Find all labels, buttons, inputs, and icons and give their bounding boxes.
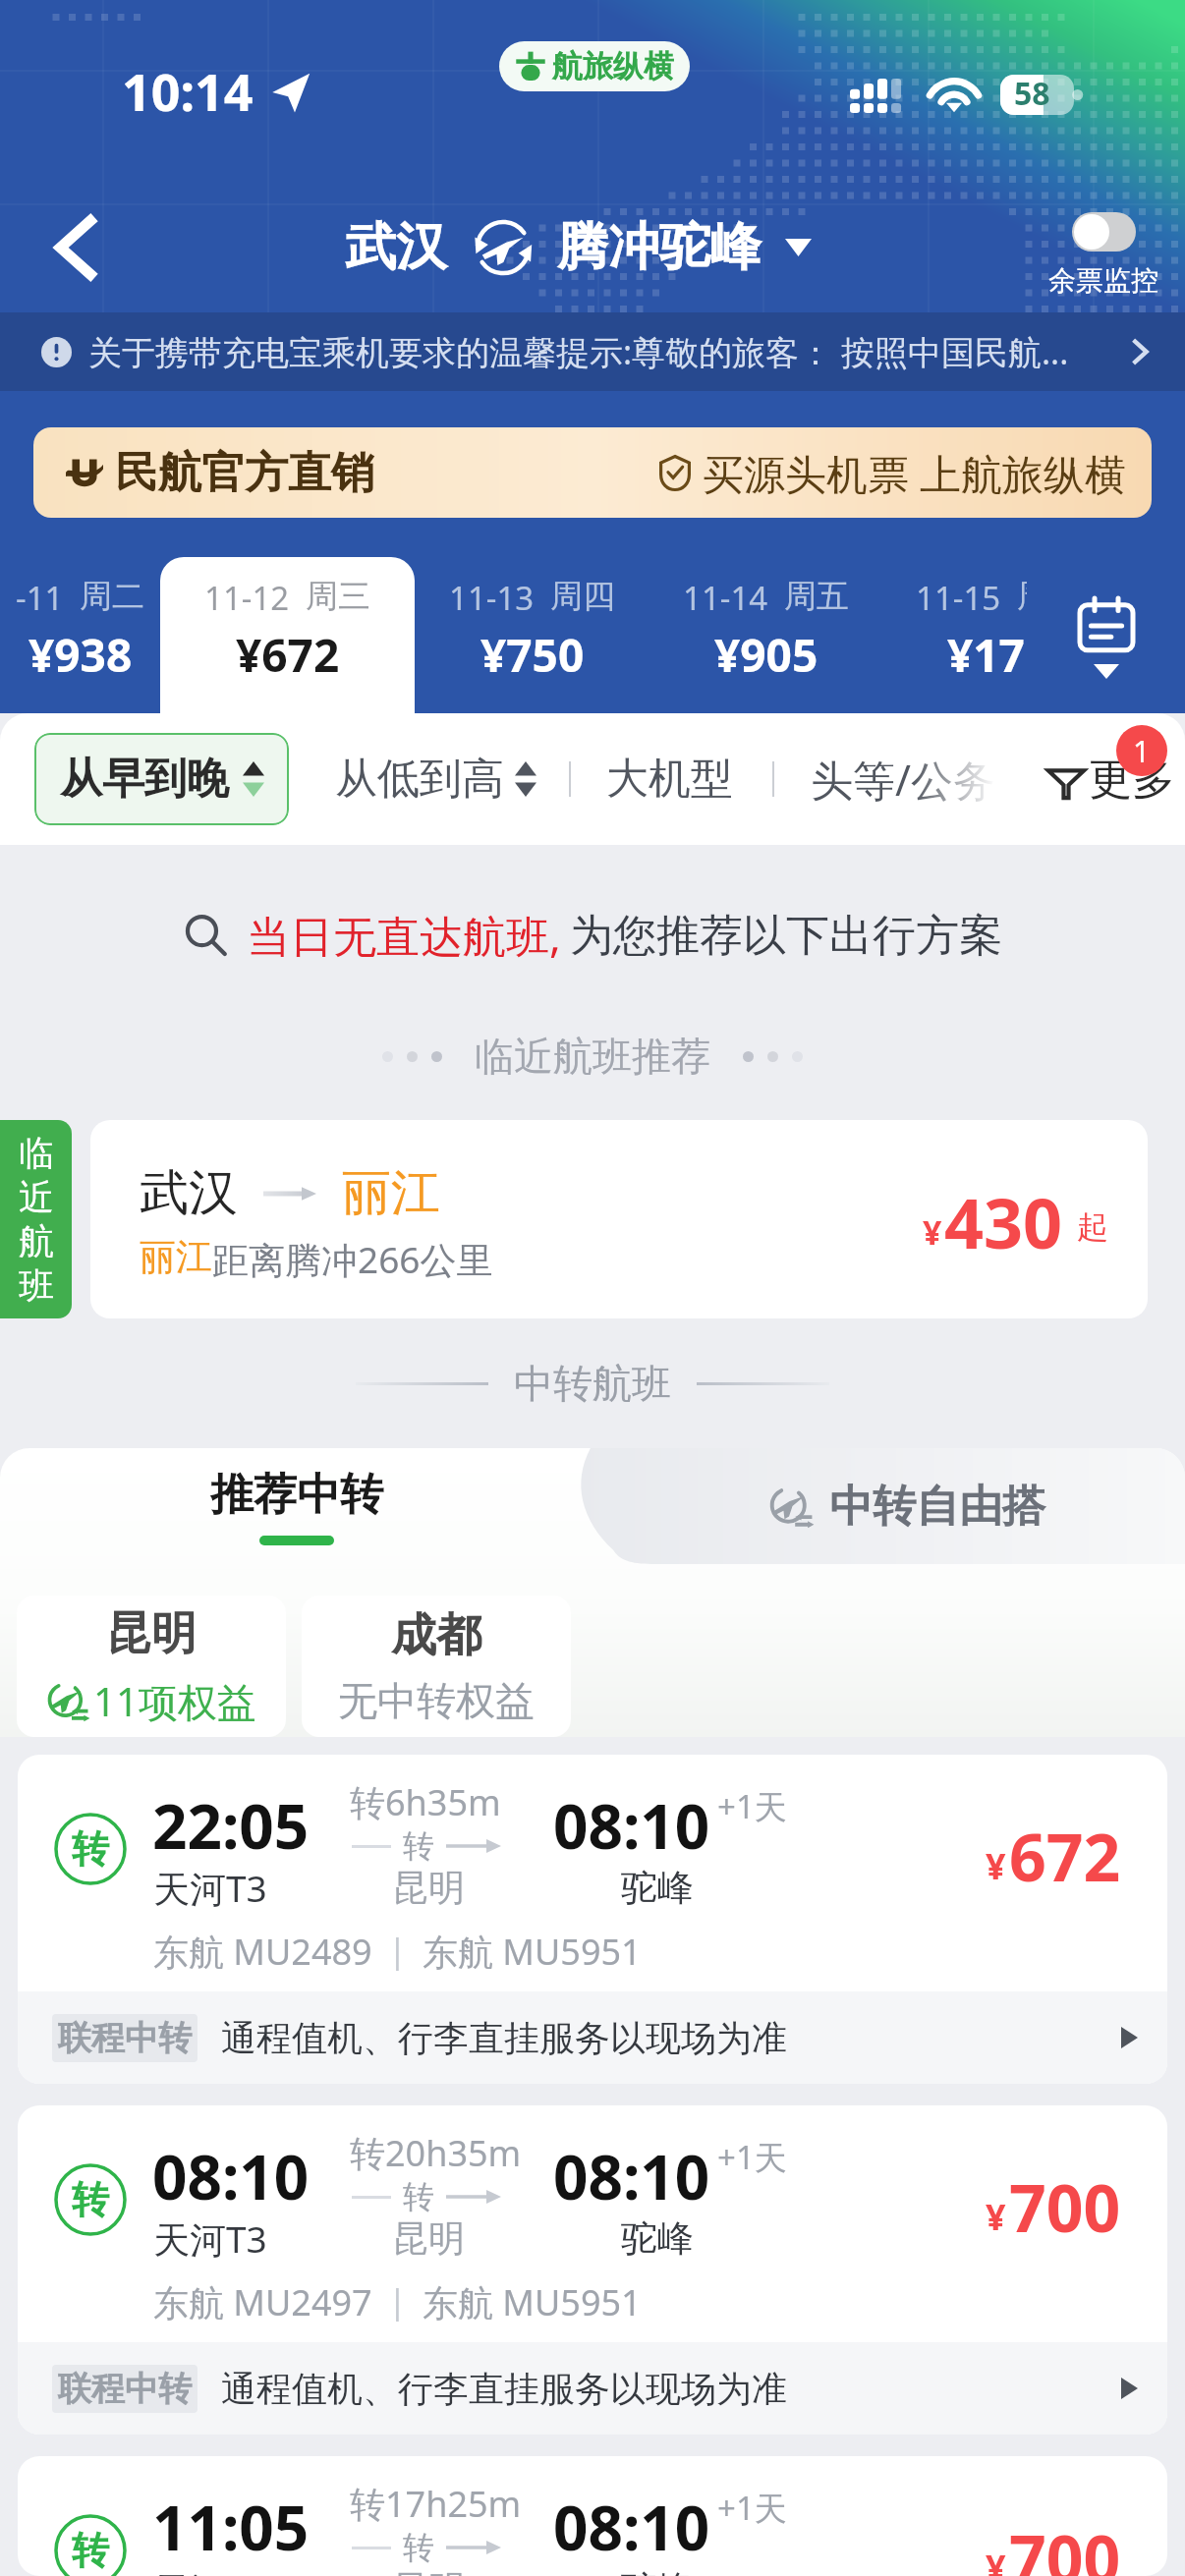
- staticText: 11项权益: [93, 1674, 256, 1728]
- staticText: 昆明: [392, 2215, 465, 2262]
- button[interactable]: -11: [0, 557, 160, 713]
- staticText: |: [388, 2278, 407, 2324]
- staticText: 关于携带充电宝乘机要求的温馨提示:尊敬的旅客： 按照中国民航...: [88, 329, 1069, 374]
- staticText: 航旅纵横: [552, 47, 674, 85]
- staticText: 11-15: [916, 576, 1001, 620]
- staticText: 为您推荐以下出行方案: [570, 909, 1002, 963]
- button[interactable]: 中转自由搭: [768, 1480, 1045, 1534]
- staticText: 武汉: [140, 1162, 238, 1224]
- staticText: 班: [19, 1263, 54, 1308]
- staticText: 转17h25m: [350, 2480, 522, 2528]
- staticText: |: [388, 1928, 407, 1973]
- staticText: 通程值机、行李直挂服务以现场为准: [221, 2016, 787, 2060]
- staticText: 更多: [1089, 753, 1175, 807]
- staticText: 东航 MU5951: [423, 2278, 642, 2326]
- button[interactable]: 11-12: [160, 557, 415, 713]
- button[interactable]: 更多: [1045, 753, 1175, 807]
- staticText: 中转航班: [514, 1359, 671, 1408]
- staticText: 转: [72, 2527, 109, 2574]
- staticText: 22:05: [152, 1784, 310, 1867]
- staticText: 转: [403, 1826, 434, 1866]
- staticText: 430: [944, 1175, 1063, 1268]
- staticText: 成都: [391, 1607, 481, 1664]
- staticText: 当日无直达航班,: [247, 906, 561, 965]
- staticText: 周五: [784, 576, 849, 617]
- staticText: 东航 MU5951: [423, 1928, 642, 1976]
- staticText: 昆明: [392, 2566, 465, 2576]
- staticText: 转: [72, 2176, 109, 2223]
- staticText: 联程中转: [58, 2017, 192, 2059]
- button[interactable]: 头等/公务: [811, 751, 995, 809]
- button[interactable]: 昆明: [17, 1596, 286, 1737]
- button[interactable]: Calendar: [1027, 557, 1185, 713]
- staticText: ¥: [986, 2193, 1006, 2241]
- staticText: 08:10: [553, 1784, 710, 1867]
- staticText: 天河T3: [153, 2213, 267, 2264]
- button[interactable]: 成都: [302, 1596, 571, 1737]
- staticText: 中转自由搭: [829, 1480, 1045, 1534]
- staticText: 腾冲驼峰: [557, 215, 762, 280]
- staticText: 推荐中转: [210, 1468, 383, 1522]
- staticText: 联程中转: [58, 2368, 192, 2410]
- button[interactable]: 余票监控: [1048, 212, 1158, 298]
- staticText: 距离腾冲266公里: [212, 1234, 493, 1284]
- staticText: ¥672: [236, 624, 340, 686]
- staticText: 转6h35m: [350, 1778, 501, 1826]
- button[interactable]: 联程中转: [18, 1991, 1167, 2084]
- staticText: 临近航班推荐: [475, 1032, 710, 1081]
- staticText: 昆明: [106, 1605, 197, 1662]
- button[interactable]: 从早到晚: [34, 733, 289, 825]
- staticText: 通程值机、行李直挂服务以现场为准: [221, 2367, 787, 2411]
- staticText: 买源头机票 上航旅纵横: [703, 445, 1126, 501]
- staticText: 转: [72, 1825, 109, 1873]
- staticText: 头等/公务: [811, 751, 995, 809]
- button[interactable]: 11-15: [882, 557, 1115, 713]
- button[interactable]: 11-14: [649, 557, 882, 713]
- staticText: 丽江: [342, 1162, 440, 1224]
- staticText: 东航 MU2497: [153, 2278, 372, 2326]
- staticText: 武汉: [345, 215, 447, 280]
- staticText: 转: [403, 2177, 434, 2216]
- button[interactable]: 民航官方直销: [33, 427, 1152, 518]
- staticText: 天河T3: [153, 1863, 267, 1913]
- button[interactable]: 推荐中转: [0, 1448, 592, 1564]
- staticText: 672: [1009, 1812, 1121, 1900]
- button[interactable]: 转: [18, 2456, 1167, 2576]
- staticText: 东航 MU2489: [153, 1928, 372, 1976]
- staticText: 从早到晚: [60, 753, 229, 806]
- staticText: 08:10: [553, 2486, 710, 2568]
- button[interactable]: 关于携带充电宝乘机要求的温馨提示:尊敬的旅客： 按照中国民航...: [0, 312, 1185, 391]
- staticText: 08:10: [553, 2135, 710, 2217]
- staticText: ¥938: [28, 624, 133, 686]
- staticText: 丽江: [140, 1234, 212, 1280]
- button[interactable]: 转: [18, 2105, 1167, 2435]
- staticText: 转: [403, 2528, 434, 2567]
- staticText: 11-13: [449, 576, 535, 620]
- staticText: ¥750: [480, 624, 585, 686]
- button[interactable]: Back: [35, 208, 114, 287]
- staticText: 昆明: [392, 1865, 465, 1911]
- staticText: 周四: [550, 576, 615, 617]
- staticText: 转20h35m: [350, 2129, 522, 2177]
- staticText: 无中转权益: [338, 1676, 535, 1725]
- button[interactable]: 从低到高: [335, 753, 536, 806]
- staticText: 从低到高: [335, 753, 504, 806]
- button[interactable]: 联程中转: [18, 2342, 1167, 2435]
- staticText: +1天: [717, 2135, 787, 2179]
- staticText: 驼峰: [621, 2215, 694, 2262]
- staticText: ¥175: [947, 624, 1051, 686]
- staticText: 11-12: [204, 576, 290, 620]
- staticText: 航: [19, 1219, 54, 1263]
- staticText: +1天: [717, 2486, 787, 2530]
- staticText: 起: [1077, 1207, 1108, 1247]
- button[interactable]: 大机型: [606, 753, 733, 806]
- staticText: ¥: [923, 1209, 942, 1255]
- button[interactable]: 武汉: [345, 215, 812, 280]
- button[interactable]: 11-13: [415, 557, 649, 713]
- staticText: 余票监控: [1048, 263, 1158, 298]
- button[interactable]: 转: [18, 1755, 1167, 2084]
- staticText: ¥905: [714, 624, 818, 686]
- staticText: ¥: [986, 1842, 1006, 1890]
- button[interactable]: 武汉: [90, 1120, 1148, 1318]
- staticText: ¥: [986, 2544, 1006, 2576]
